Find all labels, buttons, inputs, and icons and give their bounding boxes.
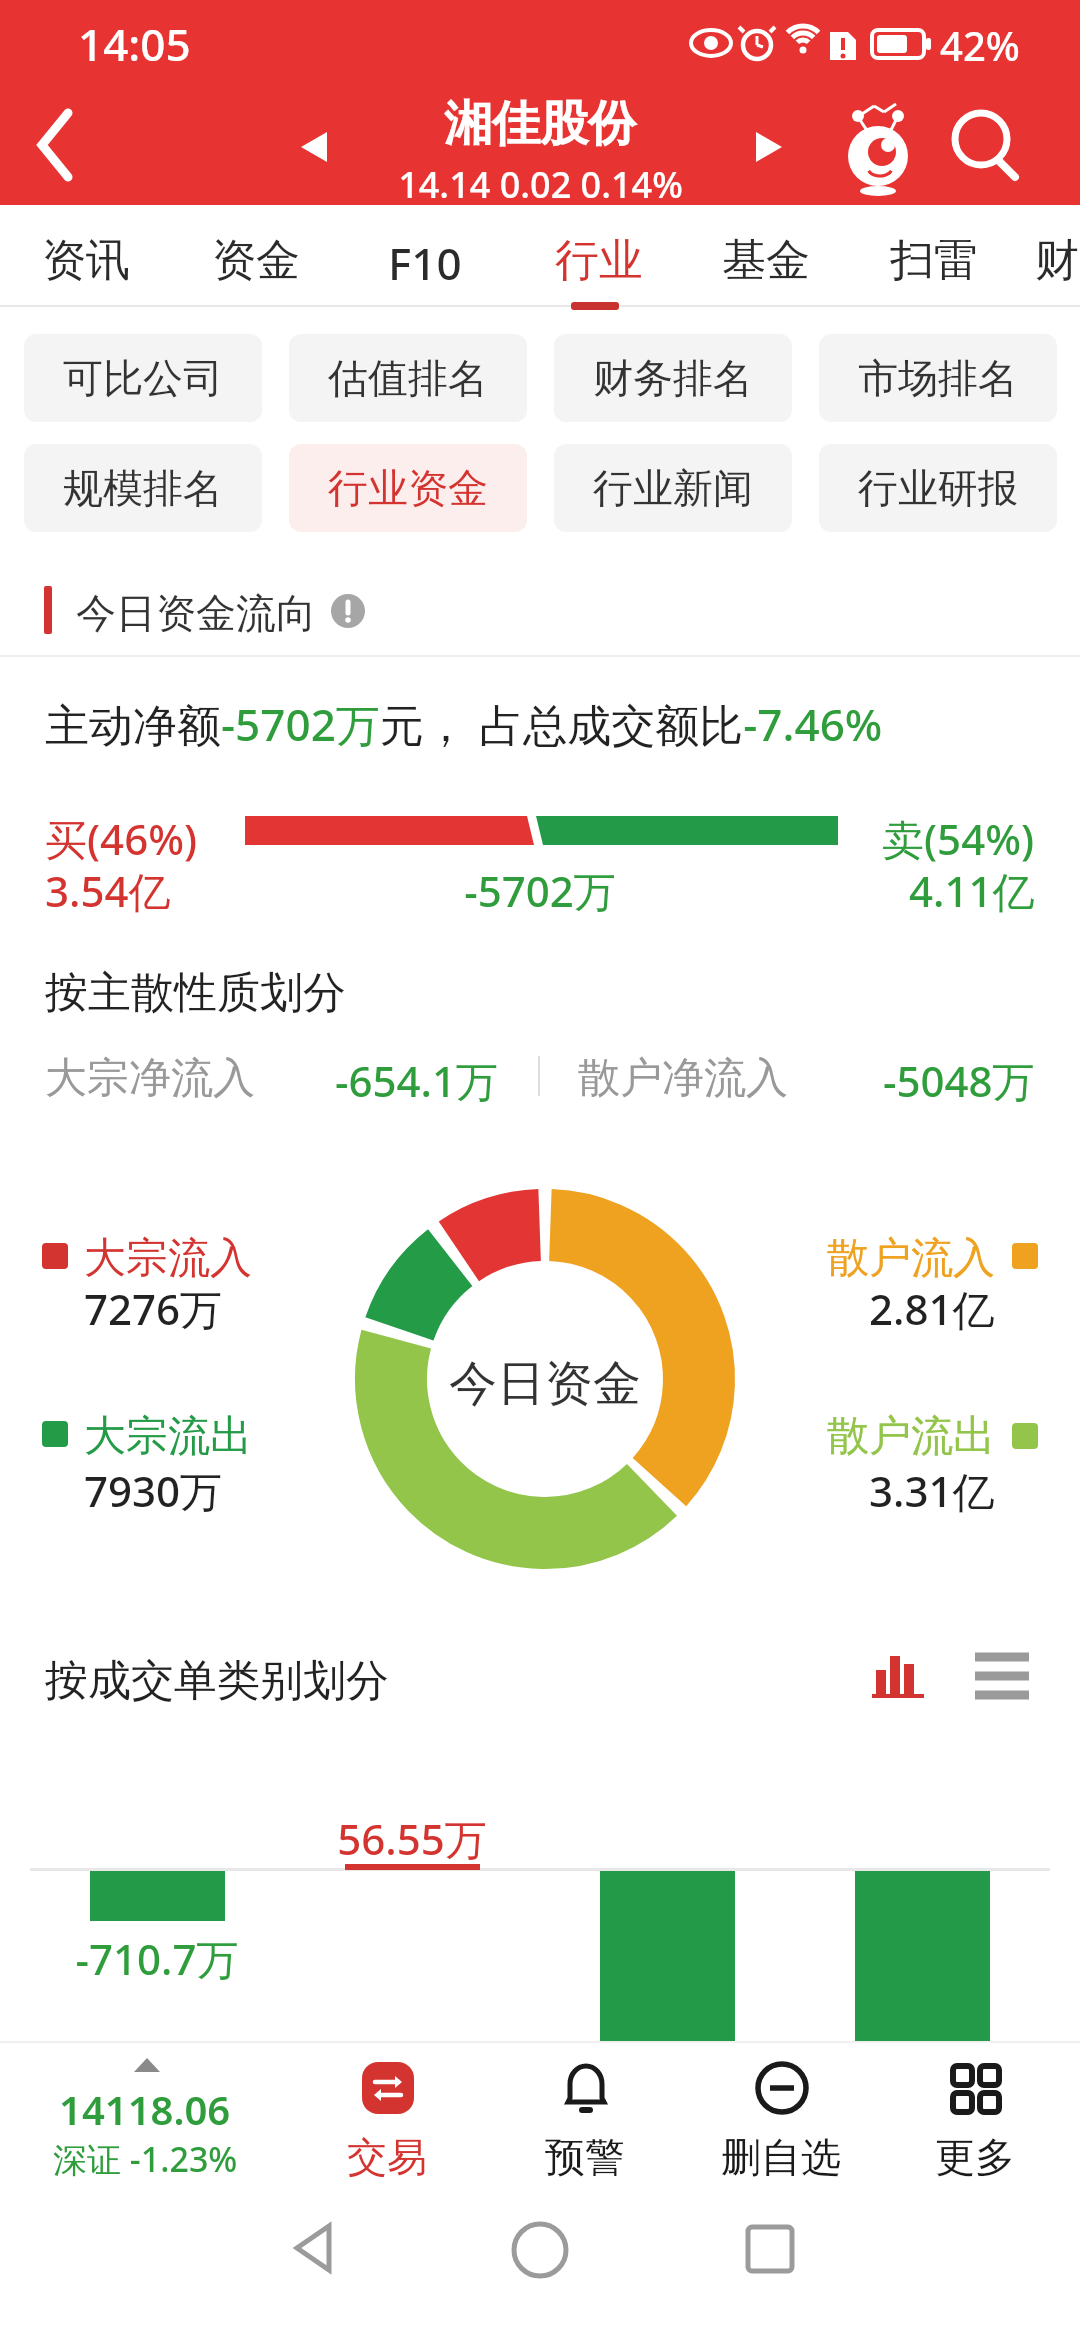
staticText: 买(46%)	[45, 810, 198, 867]
staticText: 财	[1035, 233, 1079, 288]
button[interactable]: 14118.06	[30, 2046, 260, 2186]
staticText: 深证 -1.23%	[53, 2136, 238, 2182]
staticText: 散户流出	[827, 1410, 995, 1463]
button[interactable]: 删自选	[716, 2050, 846, 2185]
button[interactable]	[945, 105, 1025, 185]
button[interactable]	[510, 2220, 570, 2280]
button[interactable]	[748, 130, 788, 170]
staticText: -5048万	[883, 1052, 1035, 1109]
staticText: 42%	[940, 18, 1020, 72]
button[interactable]	[295, 130, 335, 170]
button[interactable]: 更多	[910, 2050, 1040, 2185]
staticText: 散户净流入	[578, 1052, 788, 1105]
staticText: 财务排名	[593, 353, 753, 403]
staticText: 湘佳股份	[444, 94, 636, 154]
button[interactable]	[285, 2222, 345, 2278]
staticText: 行业资金	[328, 463, 488, 513]
staticText: 大宗净流入	[45, 1052, 255, 1105]
button[interactable]	[975, 1652, 1031, 1700]
staticText: 删自选	[721, 2132, 841, 2182]
button[interactable]	[0, 85, 120, 205]
button[interactable]: 预警	[520, 2050, 650, 2185]
staticText: 大宗流出	[84, 1410, 252, 1463]
staticText: 行业研报	[858, 463, 1018, 513]
staticText: 更多	[935, 2132, 1015, 2182]
staticText: -654.1万	[335, 1052, 499, 1109]
staticText: -710.7万	[75, 1930, 239, 1987]
button[interactable]: 资金	[192, 205, 322, 310]
staticText: 规模排名	[63, 463, 223, 513]
button[interactable]: 市场排名	[819, 334, 1057, 422]
staticText: 今日资金	[449, 1354, 641, 1414]
staticText: 2.81亿	[869, 1280, 995, 1337]
button[interactable]: 基金	[702, 205, 832, 310]
staticText: 预警	[545, 2132, 625, 2182]
button[interactable]: 可比公司	[24, 334, 262, 422]
staticText: 行业	[555, 233, 643, 288]
staticText: 56.55万	[337, 1810, 487, 1867]
staticText: 按主散性质划分	[45, 966, 346, 1020]
button[interactable]: 财务排名	[554, 334, 792, 422]
staticText: 基金	[722, 233, 810, 288]
staticText: 7276万	[84, 1280, 223, 1337]
button[interactable]	[870, 1648, 926, 1700]
staticText: 散户流入	[827, 1232, 995, 1285]
button[interactable]: 估值排名	[289, 334, 527, 422]
button[interactable]: F10	[368, 205, 498, 310]
staticText: 交易	[347, 2132, 427, 2182]
button[interactable]: 行业资金	[289, 444, 527, 532]
button[interactable]	[745, 2224, 797, 2276]
staticText: 可比公司	[63, 353, 223, 403]
button[interactable]: 资讯	[22, 205, 152, 310]
staticText: 14.14 0.02 0.14%	[398, 160, 683, 209]
staticText: -5702万	[464, 862, 616, 919]
staticText: 7930万	[84, 1462, 223, 1519]
staticText: 资讯	[42, 233, 130, 288]
button[interactable]	[838, 98, 918, 198]
staticText: 大宗流入	[84, 1232, 252, 1285]
staticText: 卖(54%)	[882, 810, 1035, 867]
button[interactable]: 财	[1015, 205, 1080, 310]
staticText: 行业新闻	[593, 463, 753, 513]
staticText: 14118.06	[59, 2082, 231, 2136]
staticText: 按成交单类别划分	[45, 1654, 389, 1708]
button[interactable]: 行业研报	[819, 444, 1057, 532]
staticText: 3.31亿	[869, 1462, 995, 1519]
button[interactable]: 交易	[322, 2050, 452, 2185]
staticText: 今日资金流向	[76, 588, 316, 638]
staticText: 市场排名	[858, 353, 1018, 403]
staticText: 估值排名	[328, 353, 488, 403]
staticText: 4.11亿	[909, 862, 1035, 919]
staticText: F10	[388, 233, 462, 293]
button[interactable]: 行业新闻	[554, 444, 792, 532]
button[interactable]: 行业	[535, 205, 665, 310]
staticText: 主动净额-5702万元， 占总成交额比-7.46%	[45, 694, 883, 754]
staticText: 资金	[212, 233, 300, 288]
staticText: 14:05	[78, 14, 191, 74]
staticText: 3.54亿	[45, 862, 171, 919]
button[interactable]: 规模排名	[24, 444, 262, 532]
staticText: 扫雷	[890, 233, 978, 288]
button[interactable]: 扫雷	[870, 205, 1000, 310]
